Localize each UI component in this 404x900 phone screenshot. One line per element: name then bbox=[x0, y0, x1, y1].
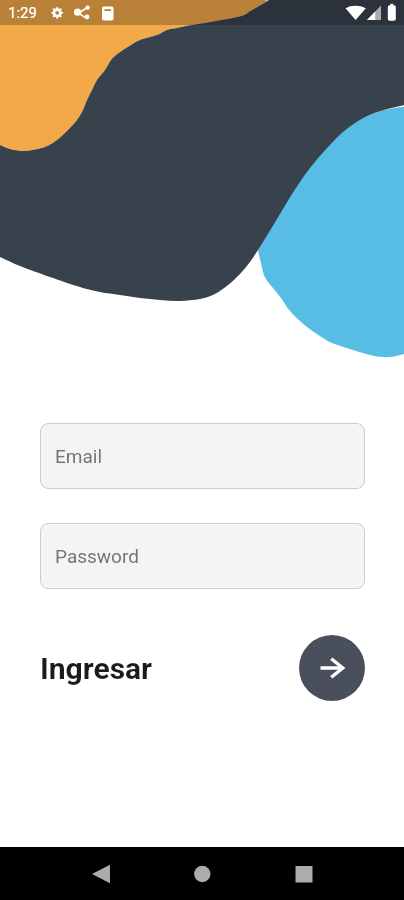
button[interactable]: Password bbox=[40, 523, 365, 589]
button[interactable]: Ingresar bbox=[40, 651, 153, 686]
staticText: Password bbox=[55, 545, 139, 567]
staticText: Email bbox=[55, 445, 103, 467]
button[interactable]: Email bbox=[40, 423, 365, 489]
staticText: 1:29 bbox=[8, 4, 37, 22]
button[interactable]: Home bbox=[179, 851, 225, 897]
button[interactable]: Recent apps bbox=[281, 851, 327, 897]
button[interactable]: Ingresar bbox=[299, 635, 365, 701]
button[interactable]: Back bbox=[78, 851, 124, 897]
